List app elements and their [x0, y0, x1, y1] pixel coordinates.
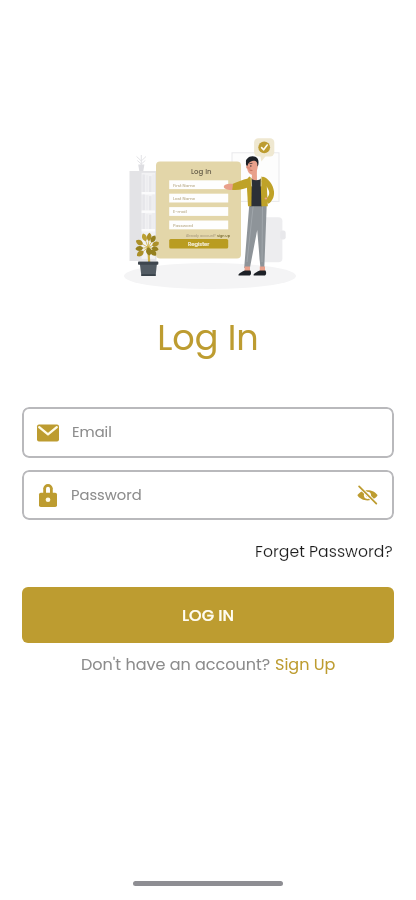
staticText: Forget Password?: [255, 541, 393, 563]
staticText: First Name: [173, 183, 196, 189]
staticText: Already account?: [186, 233, 217, 238]
staticText: E-mail: [173, 209, 187, 215]
staticText: Sign Up: [275, 653, 336, 675]
button[interactable]: Password: [22, 470, 394, 520]
staticText: Last Name: [173, 196, 196, 202]
button[interactable]: Email: [22, 407, 394, 458]
staticText: Log In: [157, 313, 259, 362]
staticText: Register: [188, 241, 210, 248]
staticText: Don't have an account?: [81, 653, 275, 675]
button[interactable]: Show password: [353, 481, 381, 509]
staticText: Sign Up: [217, 233, 231, 238]
staticText: Log In: [191, 167, 212, 177]
staticText: Password: [71, 485, 353, 506]
staticText: LOG IN: [182, 604, 234, 626]
staticText: Password: [173, 223, 194, 229]
button[interactable]: Forget Password?: [255, 541, 393, 563]
staticText: Email: [72, 422, 112, 443]
button[interactable]: LOG IN: [22, 587, 394, 643]
button[interactable]: Sign Up: [275, 653, 336, 675]
